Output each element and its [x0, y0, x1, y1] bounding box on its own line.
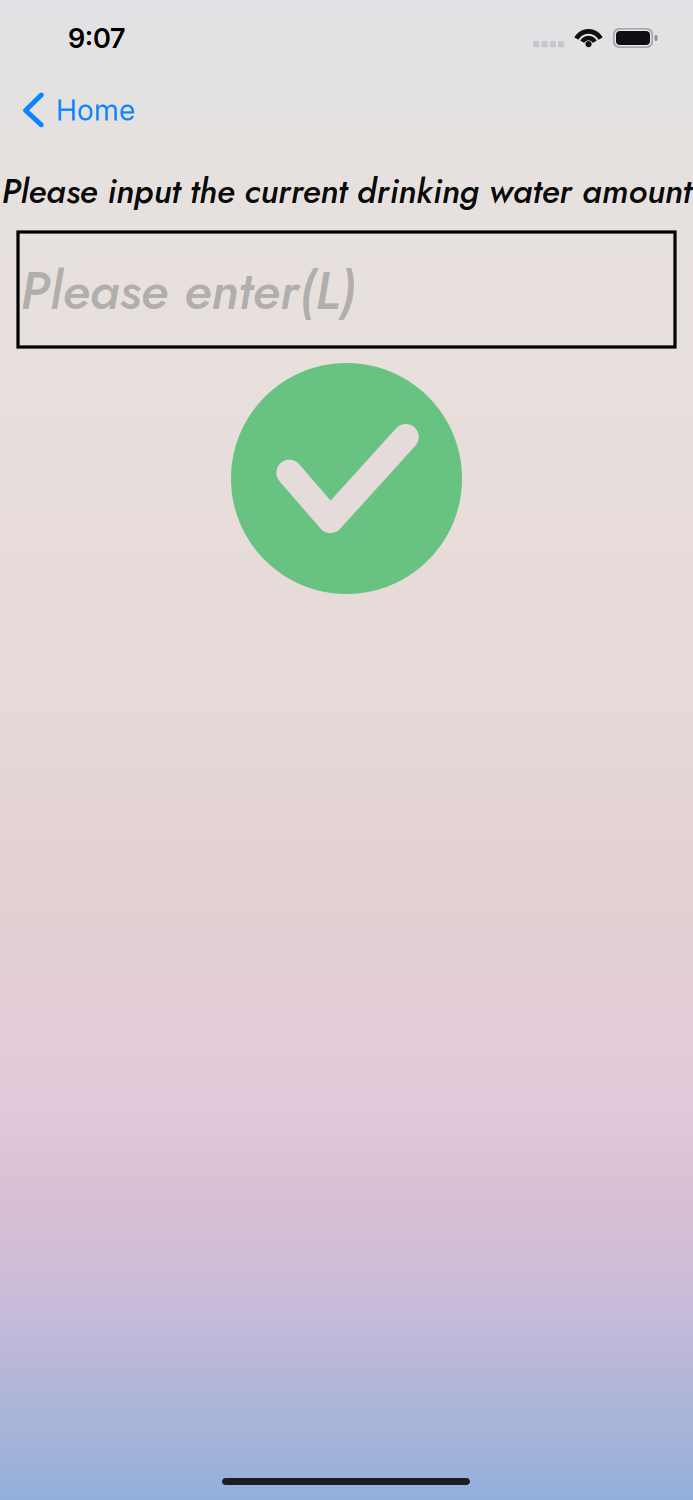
staticText: Please enter(L)	[20, 252, 363, 329]
staticText: Home	[56, 93, 135, 127]
staticText: 9:07	[68, 21, 125, 55]
button[interactable]: Please enter(L)	[18, 232, 675, 347]
button[interactable]: Home	[0, 82, 153, 138]
staticText: Please input the current drinking water …	[0, 166, 693, 216]
